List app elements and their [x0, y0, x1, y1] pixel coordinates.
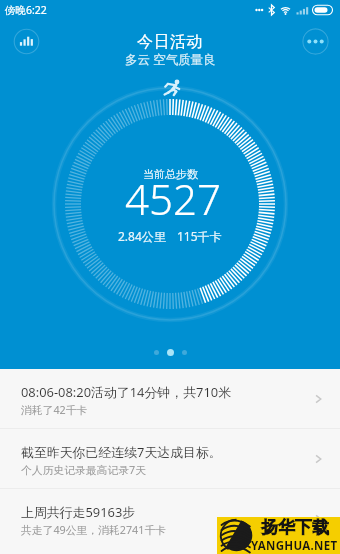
button[interactable]: More options: [302, 28, 329, 55]
staticText: 08:06-08:20活动了14分钟，共710米: [21, 383, 232, 401]
staticText: 扬华下载: [261, 517, 329, 538]
button[interactable]: 截至昨天你已经连续7天达成目标。: [0, 429, 340, 488]
staticText: 截至昨天你已经连续7天达成目标。: [21, 443, 222, 461]
staticText: 共走了49公里，消耗2741千卡: [21, 522, 167, 537]
button[interactable]: 上周共行走59163步: [0, 489, 340, 548]
staticText: 上周共行走59163步: [21, 503, 136, 521]
staticText: 今日活动: [137, 32, 203, 52]
staticText: 消耗了42千卡: [21, 402, 88, 417]
staticText: YANGHUA.NET: [251, 538, 338, 554]
button[interactable]: 08:06-08:20活动了14分钟，共710米: [0, 369, 340, 428]
staticText: 2.84公里: [118, 228, 166, 244]
staticText: 4527: [125, 170, 221, 227]
staticText: 个人历史记录最高记录7天: [21, 462, 146, 477]
staticText: 当前总步数: [143, 167, 198, 181]
button[interactable]: Statistics: [13, 28, 40, 55]
staticText: 傍晚6:22: [5, 3, 47, 17]
staticText: 115千卡: [177, 228, 222, 244]
staticText: 多云 空气质量良: [125, 51, 216, 68]
